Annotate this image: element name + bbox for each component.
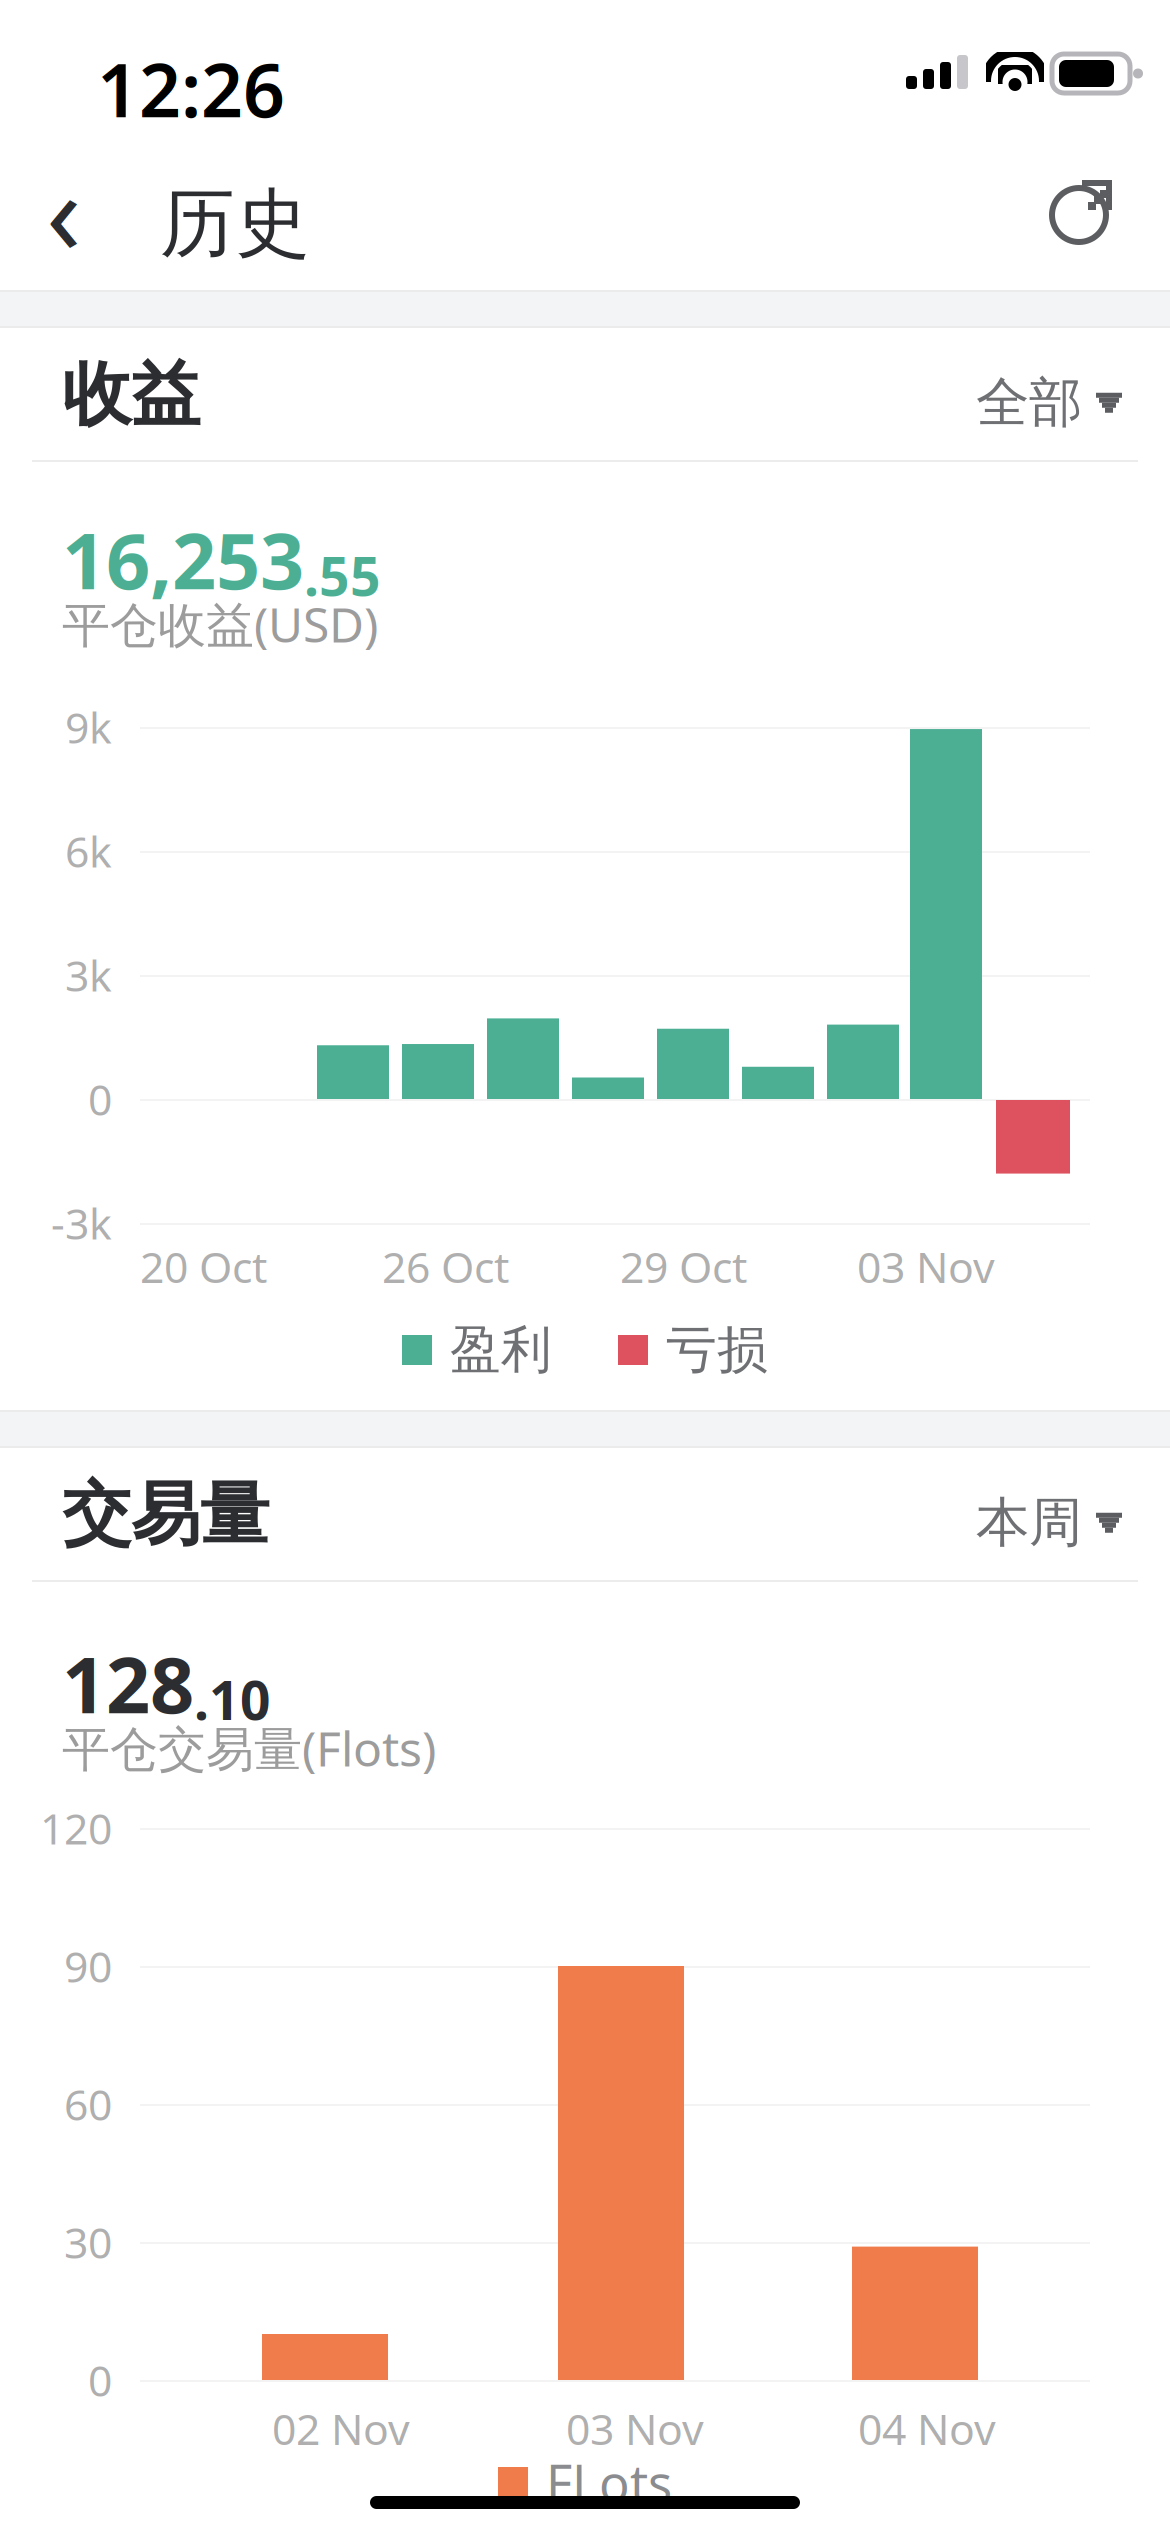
staticText: 交易量 xyxy=(62,1472,269,1557)
staticText: .55 xyxy=(304,540,381,611)
staticText: 亏损 xyxy=(666,1319,768,1381)
button[interactable]: 全部 xyxy=(962,352,1136,453)
staticText: 收益 xyxy=(62,352,200,437)
staticText: 120 xyxy=(40,1800,112,1856)
staticText: 03 Nov xyxy=(566,2400,704,2457)
staticText: 历史 xyxy=(160,178,310,270)
staticText: 02 Nov xyxy=(272,2400,410,2457)
button[interactable]: 本周 xyxy=(962,1472,1136,1573)
staticText: 0 xyxy=(88,1071,112,1127)
staticText: 26 Oct xyxy=(382,1238,509,1295)
button[interactable]: Share xyxy=(1026,150,1146,270)
staticText: 9k xyxy=(65,699,112,755)
staticText: FLots xyxy=(546,2448,672,2516)
button[interactable]: Back xyxy=(4,155,124,265)
staticText: 16,253 xyxy=(62,508,304,611)
staticText: 30 xyxy=(64,2214,112,2270)
staticText: 20 Oct xyxy=(140,1238,267,1295)
staticText: 03 Nov xyxy=(857,1238,995,1295)
staticText: 04 Nov xyxy=(858,2400,996,2457)
staticText: 60 xyxy=(64,2076,112,2132)
staticText: 平仓收益(USD) xyxy=(62,592,378,656)
staticText: 12:26 xyxy=(97,40,285,137)
staticText: 3k xyxy=(65,947,112,1003)
staticText: -3k xyxy=(51,1195,112,1251)
staticText: 全部 xyxy=(976,370,1082,435)
staticText: 128 xyxy=(62,1632,194,1735)
staticText: 盈利 xyxy=(450,1319,552,1381)
staticText: 90 xyxy=(64,1938,112,1994)
staticText: ‹ xyxy=(46,134,82,286)
staticText: 平仓交易量(Flots) xyxy=(62,1716,436,1780)
staticText: 0 xyxy=(88,2352,112,2408)
staticText: 本周 xyxy=(976,1490,1082,1555)
staticText: .10 xyxy=(194,1664,271,1735)
staticText: 6k xyxy=(65,823,112,879)
staticText: 29 Oct xyxy=(620,1238,747,1295)
